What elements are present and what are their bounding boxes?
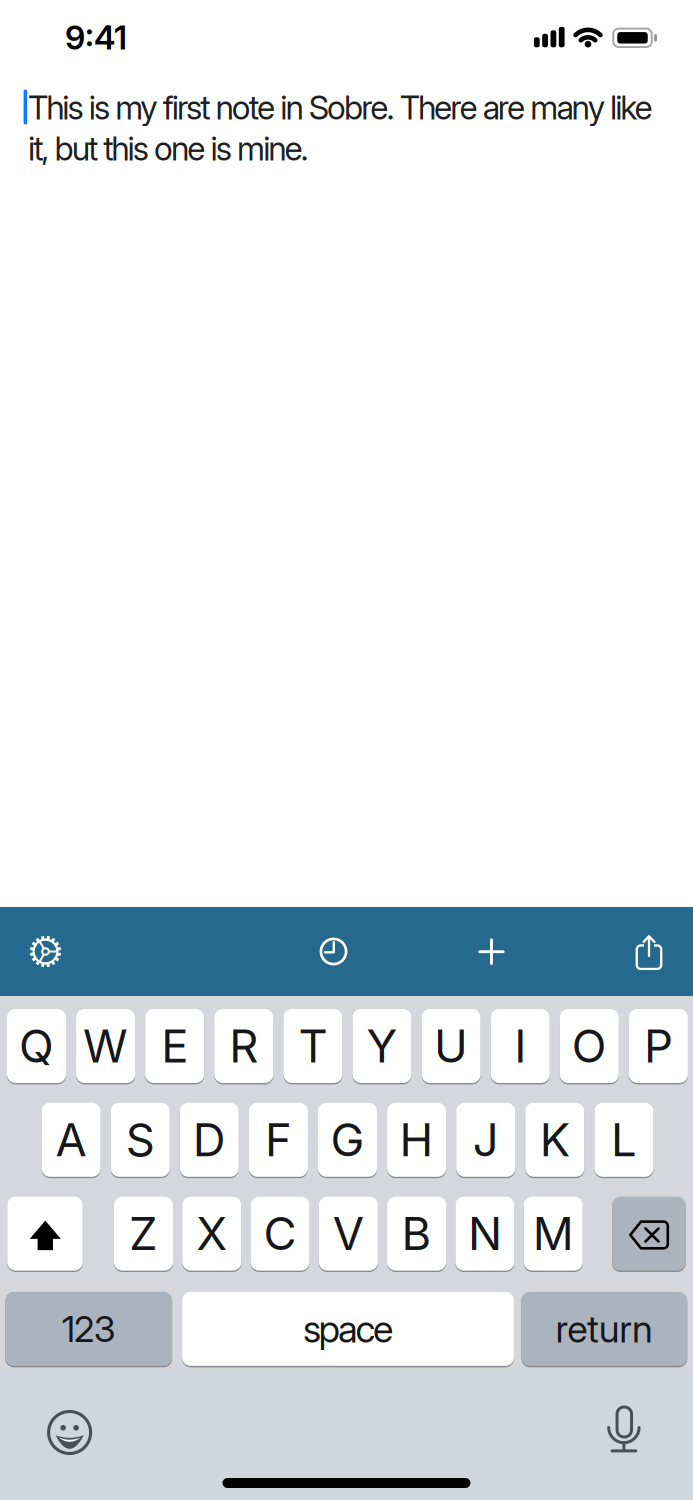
button[interactable]: return xyxy=(521,1290,687,1367)
button[interactable]: O xyxy=(560,1007,619,1084)
button[interactable]: E xyxy=(145,1007,204,1084)
button[interactable]: P xyxy=(629,1007,688,1084)
button[interactable]: L xyxy=(594,1101,653,1178)
staticText: J xyxy=(473,1112,499,1167)
staticText: T xyxy=(298,1019,327,1073)
staticText: This is my first note in Sobre. There ar… xyxy=(28,88,652,127)
button[interactable]: F xyxy=(249,1101,308,1178)
staticText: V xyxy=(333,1206,364,1261)
button[interactable]: Y xyxy=(352,1007,411,1084)
staticText: N xyxy=(468,1206,502,1261)
staticText: M xyxy=(533,1206,574,1261)
button[interactable]: G xyxy=(318,1101,377,1178)
staticText: X xyxy=(196,1206,227,1261)
staticText: I xyxy=(514,1019,526,1073)
staticText: 9:41 xyxy=(65,18,127,57)
button[interactable]: V xyxy=(319,1195,378,1272)
button[interactable]: D xyxy=(180,1101,239,1178)
button[interactable]: Z xyxy=(114,1195,173,1272)
button[interactable]: Delete xyxy=(612,1195,686,1272)
button[interactable]: Emoji xyxy=(38,1400,102,1464)
staticText: E xyxy=(161,1019,188,1073)
staticText: D xyxy=(193,1112,226,1167)
button[interactable]: U xyxy=(422,1007,481,1084)
button[interactable]: S xyxy=(111,1101,170,1178)
staticText: K xyxy=(540,1112,570,1167)
staticText: space xyxy=(303,1306,393,1351)
button[interactable]: J xyxy=(456,1101,515,1178)
button[interactable]: Share xyxy=(619,921,679,981)
staticText: H xyxy=(400,1112,434,1167)
staticText: Y xyxy=(366,1019,397,1073)
button[interactable]: B xyxy=(387,1195,446,1272)
staticText: 123 xyxy=(62,1307,116,1351)
staticText: R xyxy=(229,1019,258,1073)
staticText: Z xyxy=(129,1206,158,1261)
button[interactable]: A xyxy=(42,1101,101,1178)
staticText: L xyxy=(611,1112,637,1167)
button[interactable]: T xyxy=(283,1007,342,1084)
staticText: S xyxy=(126,1112,155,1167)
button[interactable]: Shift xyxy=(7,1195,83,1272)
button[interactable]: Dictate xyxy=(592,1398,656,1462)
button[interactable]: N xyxy=(455,1195,514,1272)
button[interactable]: W xyxy=(76,1007,135,1084)
staticText: A xyxy=(56,1112,87,1167)
button[interactable]: Settings xyxy=(15,921,75,981)
button[interactable]: K xyxy=(525,1101,584,1178)
staticText: Q xyxy=(19,1019,54,1073)
button[interactable]: Q xyxy=(7,1007,66,1084)
button[interactable]: 123 xyxy=(5,1290,172,1367)
button[interactable]: C xyxy=(251,1195,310,1272)
staticText: G xyxy=(330,1112,364,1167)
staticText: it, but this one is mine. xyxy=(28,129,309,168)
staticText: P xyxy=(644,1019,673,1073)
staticText: W xyxy=(83,1019,128,1073)
button[interactable]: M xyxy=(524,1195,583,1272)
staticText: U xyxy=(434,1019,468,1073)
button[interactable]: New note xyxy=(461,921,521,981)
staticText: F xyxy=(265,1112,292,1167)
staticText: B xyxy=(402,1206,432,1261)
staticText: return xyxy=(555,1306,653,1351)
button[interactable]: History xyxy=(303,921,363,981)
button[interactable]: X xyxy=(182,1195,241,1272)
button[interactable]: space xyxy=(182,1290,514,1367)
button[interactable]: R xyxy=(214,1007,273,1084)
staticText: O xyxy=(572,1019,607,1073)
button[interactable]: H xyxy=(387,1101,446,1178)
staticText: C xyxy=(264,1206,297,1261)
button[interactable]: I xyxy=(491,1007,550,1084)
